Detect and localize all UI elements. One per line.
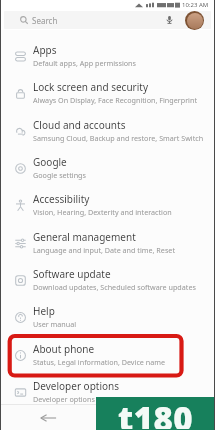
staticText: Vision, Hearing, Dexterity and interacti… [33, 207, 172, 217]
button[interactable]: Lock screen and security [0, 74, 215, 111]
button[interactable]: Apps [0, 37, 215, 74]
staticText: Developer options [33, 394, 95, 404]
staticText: Google settings [33, 170, 86, 180]
button[interactable]: Cloud and accounts [0, 112, 215, 149]
button[interactable]: Software update [0, 261, 215, 298]
staticText: Status, Legal information, Device name [33, 357, 166, 367]
button[interactable]: General management [0, 224, 215, 261]
staticText: Apps [33, 43, 57, 57]
button[interactable]: About phone [0, 336, 215, 373]
staticText: Help [33, 304, 55, 318]
staticText: Google [33, 155, 67, 169]
staticText: Default apps, App permissions [33, 58, 136, 68]
staticText: Accessibility [33, 192, 90, 206]
staticText: Samsung Cloud, Backup and restore, Smart… [33, 133, 204, 143]
button[interactable]: Google [0, 149, 215, 186]
staticText: User manual [33, 319, 77, 329]
staticText: Cloud and accounts [33, 118, 126, 132]
staticText: Download updates, Scheduled software upd… [33, 282, 196, 292]
staticText: Developer options [33, 379, 120, 393]
staticText: Search [32, 15, 58, 26]
staticText: Language and input, Date and time, Reset [33, 245, 175, 255]
button[interactable]: Account [185, 11, 204, 30]
button[interactable]: Developer options [0, 373, 215, 410]
staticText: Lock screen and security [33, 80, 148, 94]
button[interactable]: Help [0, 298, 215, 335]
staticText: General management [33, 230, 136, 244]
staticText: Always On Display, Face Recognition, Fin… [33, 95, 215, 105]
staticText: t180 [118, 396, 194, 429]
staticText: 10:23 AM [182, 1, 209, 9]
button[interactable]: Back [39, 412, 57, 424]
button[interactable]: Accessibility [0, 186, 215, 223]
button[interactable] [4, 11, 211, 29]
staticText: Software update [33, 267, 111, 281]
button[interactable]: Voice search [164, 14, 175, 25]
staticText: About phone [33, 342, 95, 356]
